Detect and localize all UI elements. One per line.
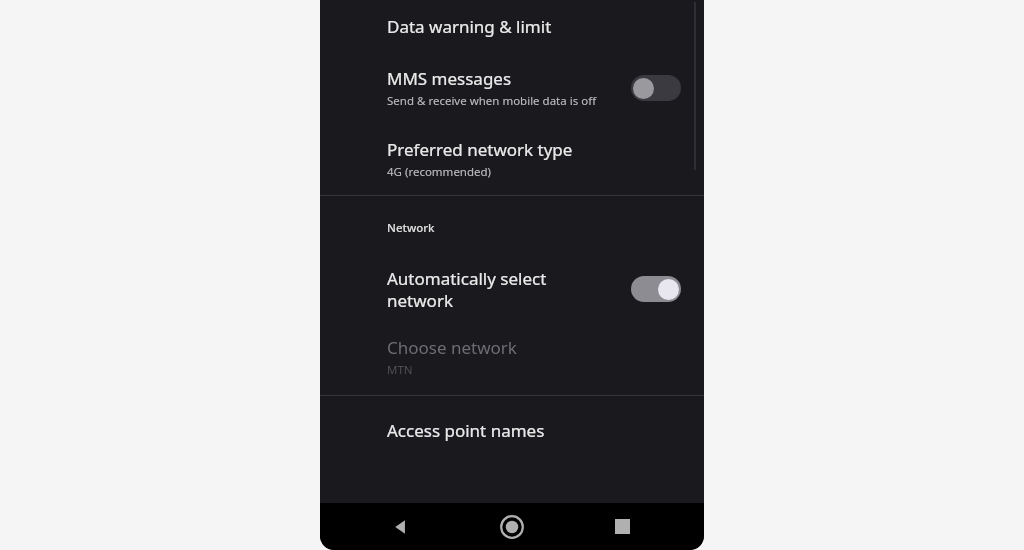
button[interactable]: Choose network <box>320 332 704 390</box>
button[interactable]: Access point names <box>320 404 704 456</box>
button[interactable]: Back <box>377 503 425 550</box>
staticText: Automatically select network <box>387 267 570 312</box>
button[interactable]: Toggle off <box>630 74 682 102</box>
staticText: Network <box>387 220 435 236</box>
button[interactable]: Toggle on <box>630 275 682 303</box>
staticText: Access point names <box>387 419 545 442</box>
staticText: 4G (recommended) <box>387 164 492 180</box>
button[interactable]: Data warning & limit <box>320 0 704 52</box>
staticText: Send & receive when mobile data is off <box>387 93 597 109</box>
staticText: MMS messages <box>387 67 512 90</box>
staticText: Preferred network type <box>387 138 573 161</box>
staticText: Choose network <box>387 336 517 359</box>
staticText: Data warning & limit <box>387 15 552 38</box>
button[interactable]: Home <box>488 503 536 550</box>
staticText: MTN <box>387 362 413 378</box>
button[interactable]: Preferred network type <box>320 128 704 190</box>
button[interactable]: Recent apps <box>598 503 646 550</box>
button[interactable]: MMS messages <box>320 56 704 120</box>
button[interactable]: Automatically select network <box>320 253 704 325</box>
